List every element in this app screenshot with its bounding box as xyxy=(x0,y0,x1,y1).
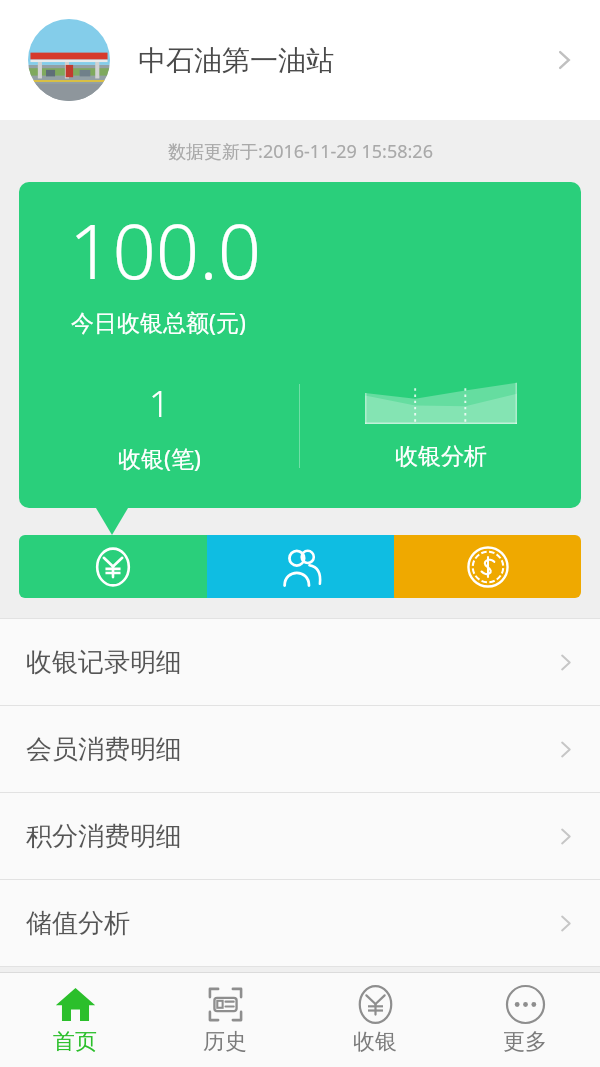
staticText: 中石油第一油站 xyxy=(138,43,334,78)
button[interactable]: 储值分析 xyxy=(0,880,600,966)
staticText: 收银分析 xyxy=(395,442,487,471)
staticText: 更多 xyxy=(503,1028,547,1056)
button[interactable]: 收银分析 xyxy=(300,356,581,496)
staticText: 收银(笔) xyxy=(118,442,201,473)
staticText: 积分消费明细 xyxy=(26,820,182,853)
staticText: 100.0 xyxy=(69,198,262,302)
staticText: 收银 xyxy=(353,1028,397,1056)
staticText: 收银记录明细 xyxy=(26,646,182,679)
button[interactable]: 100.0 xyxy=(19,182,581,508)
button[interactable]: 中石油第一油站 xyxy=(0,0,600,120)
button[interactable]: 历史 xyxy=(150,973,300,1067)
button[interactable]: 1 xyxy=(19,356,299,496)
button[interactable]: 更多 xyxy=(450,973,600,1067)
staticText: 会员消费明细 xyxy=(26,733,182,766)
staticText: 首页 xyxy=(53,1028,97,1056)
button[interactable]: 会员 xyxy=(207,535,394,598)
staticText: 储值分析 xyxy=(26,907,130,940)
button[interactable]: 收银 xyxy=(19,535,207,598)
button[interactable]: 积分消费明细 xyxy=(0,793,600,879)
button[interactable]: 首页 xyxy=(0,973,150,1067)
button[interactable]: 会员消费明细 xyxy=(0,706,600,792)
staticText: 历史 xyxy=(203,1028,247,1056)
staticText: 数据更新于:2016-11-29 15:58:26 xyxy=(168,139,433,164)
staticText: 今日收银总额(元) xyxy=(71,306,246,337)
button[interactable]: 收银 xyxy=(300,973,450,1067)
button[interactable]: 收银记录明细 xyxy=(0,619,600,705)
staticText: 1 xyxy=(149,379,170,428)
button[interactable]: 积分 xyxy=(394,535,581,598)
